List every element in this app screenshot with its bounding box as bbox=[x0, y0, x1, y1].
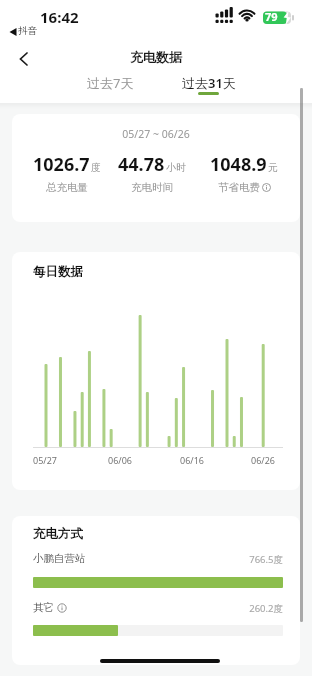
staticText: 05/27 ~ 06/26 bbox=[12, 127, 300, 141]
button[interactable] bbox=[57, 603, 67, 613]
staticText: 16:42 bbox=[40, 7, 79, 27]
staticText: 766.5度 bbox=[183, 553, 283, 566]
staticText: 充电数据 bbox=[0, 49, 312, 65]
staticText: 节省电费 bbox=[218, 181, 260, 194]
button[interactable] bbox=[8, 47, 40, 71]
staticText: 44.78 bbox=[118, 152, 165, 177]
staticText: 06/26 bbox=[249, 454, 277, 466]
staticText: 小时 bbox=[166, 161, 186, 174]
staticText: 1048.9 bbox=[210, 152, 267, 177]
staticText: 抖音 bbox=[18, 25, 37, 37]
staticText: 小鹏自营站 bbox=[33, 552, 86, 565]
staticText: 05/27 bbox=[31, 454, 59, 466]
staticText: 260.2度 bbox=[183, 602, 283, 615]
staticText: 过去31天 bbox=[182, 74, 236, 92]
staticText: 79 bbox=[265, 9, 278, 24]
staticText: 每日数据 bbox=[33, 264, 83, 280]
staticText: 元 bbox=[268, 161, 278, 174]
button[interactable]: 过去31天 bbox=[169, 70, 249, 96]
staticText: 度 bbox=[91, 161, 101, 174]
staticText: 1026.7 bbox=[33, 152, 90, 177]
staticText: 总充电量 bbox=[46, 181, 88, 194]
staticText: 06/16 bbox=[178, 454, 206, 466]
button[interactable]: 过去7天 bbox=[70, 70, 150, 96]
staticText: 过去7天 bbox=[87, 74, 134, 92]
staticText: 其它 bbox=[33, 601, 54, 614]
staticText: 06/06 bbox=[106, 454, 134, 466]
staticText: 充电方式 bbox=[33, 526, 83, 542]
button[interactable] bbox=[262, 183, 271, 192]
staticText: 充电时间 bbox=[131, 181, 173, 194]
